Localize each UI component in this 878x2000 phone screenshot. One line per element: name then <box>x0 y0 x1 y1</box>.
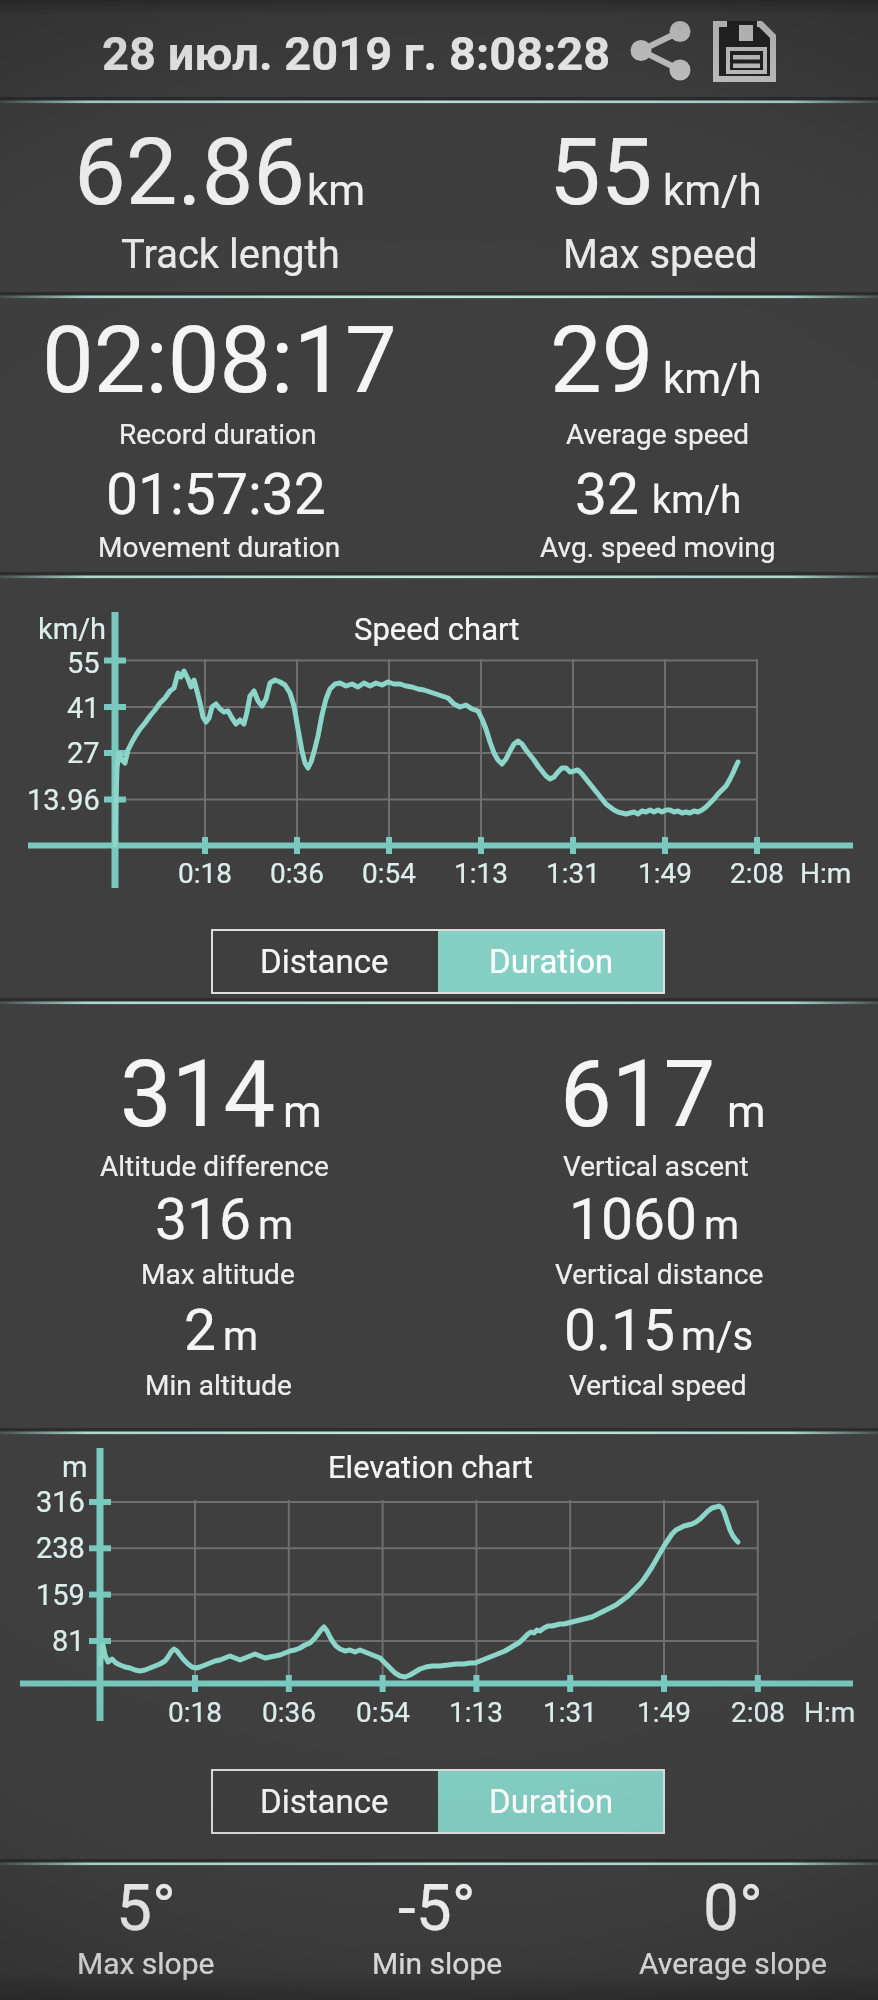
button[interactable]: Duration <box>438 929 665 994</box>
staticText: Track length <box>121 231 340 278</box>
staticText: m/s <box>681 1313 754 1360</box>
staticText: 1:49 <box>638 857 692 890</box>
staticText: m <box>704 1202 740 1249</box>
staticText: 316 <box>155 1186 252 1253</box>
staticText: 32 <box>575 461 640 528</box>
staticText: -5° <box>398 1871 476 1946</box>
staticText: 5° <box>116 1871 176 1946</box>
staticText: Elevation chart <box>328 1449 533 1485</box>
staticText: Vertical speed <box>569 1369 747 1402</box>
staticText: Distance <box>260 942 389 981</box>
staticText: 2:08 <box>731 1696 785 1729</box>
staticText: 55 <box>67 646 100 680</box>
staticText: 238 <box>36 1531 85 1565</box>
button[interactable]: Distance <box>211 929 438 994</box>
staticText: m <box>727 1086 766 1138</box>
staticText: 01:57:32 <box>106 461 326 528</box>
staticText: m <box>258 1202 294 1249</box>
staticText: 02:08:17 <box>42 307 397 415</box>
staticText: Movement duration <box>98 531 341 564</box>
staticText: 0:18 <box>178 857 232 890</box>
staticText: km/h <box>663 166 762 215</box>
staticText: Vertical ascent <box>563 1150 749 1183</box>
staticText: 0:54 <box>356 1696 410 1729</box>
staticText: Average speed <box>566 418 750 451</box>
staticText: Avg. speed moving <box>540 531 776 564</box>
staticText: Min slope <box>372 1946 503 1981</box>
staticText: Min altitude <box>145 1369 292 1402</box>
staticText: 28 июл. 2019 г. 8:08:28 <box>102 26 611 81</box>
button[interactable]: Distance <box>211 1769 438 1834</box>
staticText: 0:54 <box>362 857 416 890</box>
staticText: 0.15 <box>564 1297 676 1364</box>
staticText: 1:49 <box>637 1696 691 1729</box>
staticText: Altitude difference <box>100 1150 329 1183</box>
staticText: km/h <box>38 612 107 646</box>
staticText: 0:36 <box>262 1696 316 1729</box>
staticText: 314 <box>120 1041 276 1149</box>
staticText: Average slope <box>639 1946 827 1981</box>
staticText: 2:08 <box>730 857 784 890</box>
staticText: 62.86 <box>74 119 306 227</box>
button[interactable] <box>703 11 786 91</box>
staticText: m <box>283 1086 322 1138</box>
staticText: 29 <box>550 307 654 415</box>
staticText: Duration <box>489 942 614 981</box>
staticText: 27 <box>67 736 100 770</box>
staticText: 41 <box>67 691 100 725</box>
staticText: 617 <box>560 1041 716 1149</box>
staticText: 0:18 <box>168 1696 222 1729</box>
staticText: 1:31 <box>546 857 600 890</box>
staticText: m <box>62 1450 88 1484</box>
staticText: 0:36 <box>270 857 324 890</box>
staticText: Vertical distance <box>555 1258 764 1291</box>
staticText: 1:31 <box>543 1696 597 1729</box>
staticText: Duration <box>489 1782 614 1821</box>
staticText: km/h <box>652 478 742 523</box>
staticText: Max altitude <box>141 1258 295 1291</box>
staticText: Record duration <box>119 418 317 451</box>
staticText: m <box>223 1313 259 1360</box>
staticText: H:m <box>800 857 852 890</box>
staticText: Distance <box>260 1782 389 1821</box>
staticText: 1060 <box>569 1186 698 1253</box>
button[interactable] <box>620 11 700 91</box>
staticText: 316 <box>36 1485 85 1519</box>
staticText: Max speed <box>563 231 758 278</box>
staticText: Max slope <box>77 1946 215 1981</box>
staticText: 1:13 <box>449 1696 503 1729</box>
staticText: 81 <box>52 1624 85 1658</box>
staticText: 1:13 <box>454 857 508 890</box>
staticText: 2 <box>184 1297 217 1364</box>
staticText: km <box>307 166 366 215</box>
staticText: Speed chart <box>354 611 520 647</box>
staticText: 0° <box>703 1871 763 1946</box>
staticText: km/h <box>663 354 762 403</box>
button[interactable]: Duration <box>438 1769 665 1834</box>
staticText: H:m <box>804 1696 856 1729</box>
staticText: 159 <box>36 1578 85 1612</box>
staticText: 55 <box>549 119 653 227</box>
staticText: 13.96 <box>27 783 100 817</box>
